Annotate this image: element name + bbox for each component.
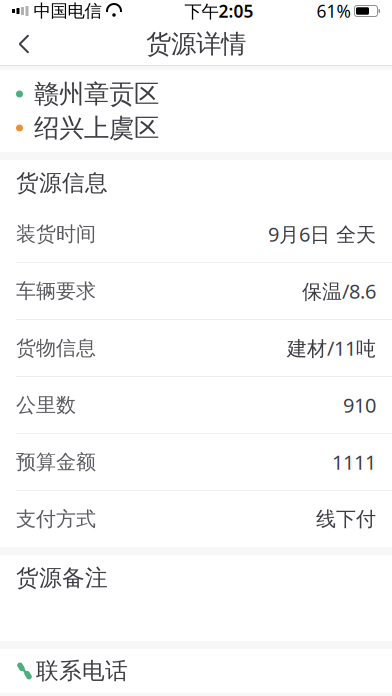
button[interactable]: 返回 <box>0 22 48 66</box>
staticText: 1111 <box>332 449 376 475</box>
staticText: 支付方式 <box>16 507 96 531</box>
staticText: 公里数 <box>16 393 76 417</box>
staticText: 货物信息 <box>16 336 96 360</box>
staticText: 线下付 <box>316 507 376 531</box>
staticText: 联系电话 <box>36 657 128 685</box>
staticText: 货源信息 <box>16 169 108 197</box>
staticText: 货源详情 <box>146 28 246 59</box>
staticText: 9月6日 全天 <box>268 221 376 247</box>
staticText: 中国电信 <box>33 0 101 22</box>
button[interactable]: 联系电话 <box>0 649 392 693</box>
staticText: 下午2:05 <box>184 0 253 22</box>
staticText: 建材/11吨 <box>287 335 376 361</box>
staticText: 装货时间 <box>16 222 96 246</box>
staticText: 绍兴上虞区 <box>34 112 159 143</box>
staticText: 61% <box>316 0 350 22</box>
staticText: 预算金额 <box>16 450 96 474</box>
staticText: 货源备注 <box>16 564 108 592</box>
staticText: 保温/8.6 <box>302 278 376 304</box>
staticText: 车辆要求 <box>16 279 96 303</box>
staticText: 赣州章贡区 <box>34 78 159 109</box>
staticText: 910 <box>343 392 376 418</box>
